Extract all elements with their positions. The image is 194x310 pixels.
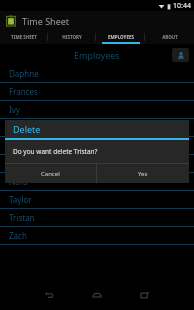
button[interactable]: Back (34, 280, 64, 310)
staticText: Taylor (9, 194, 32, 205)
staticText: Joanna (9, 122, 35, 133)
staticText: Maria (9, 158, 31, 169)
staticText: Kate (9, 140, 26, 151)
staticText: EMPLOYEES (108, 34, 134, 40)
button[interactable]: EMPLOYEES (96, 30, 145, 44)
button[interactable]: Nora (0, 173, 194, 191)
button[interactable]: Maria (0, 155, 194, 173)
staticText: Yes (138, 170, 148, 178)
staticText: Nora (9, 176, 28, 187)
button[interactable]: Yes (97, 164, 189, 183)
button[interactable]: Joanna (0, 119, 194, 137)
staticText: ABOUT (162, 34, 178, 40)
button[interactable]: Taylor (0, 191, 194, 209)
button[interactable]: Recent apps (130, 280, 160, 310)
button[interactable]: HISTORY (48, 30, 96, 44)
staticText: Employees (74, 49, 120, 61)
staticText: TIME SHEET (11, 34, 37, 40)
button[interactable]: Frances (0, 83, 194, 101)
button[interactable]: Daphne (0, 65, 194, 83)
staticText: Cancel (41, 170, 60, 178)
button[interactable]: Zach (0, 227, 194, 245)
button[interactable]: Ivy (0, 101, 194, 119)
button[interactable]: Cancel (5, 164, 96, 183)
staticText: Time Sheet (22, 15, 70, 27)
staticText: Do you want delete Tristan? (13, 147, 98, 156)
staticText: Frances (9, 86, 38, 97)
staticText: HISTORY (62, 34, 82, 40)
button[interactable]: ABOUT (145, 30, 194, 44)
button[interactable]: Kate (0, 137, 194, 155)
button[interactable]: Add employee (172, 48, 189, 62)
staticText: 10:44 (173, 1, 191, 11)
button[interactable]: Home (82, 280, 112, 310)
staticText: Daphne (9, 68, 39, 79)
staticText: Tristan (9, 212, 35, 223)
staticText: Zach (9, 230, 27, 241)
staticText: Ivy (9, 104, 20, 115)
button[interactable]: TIME SHEET (0, 30, 48, 44)
staticText: Delete (13, 123, 41, 135)
button[interactable]: Tristan (0, 209, 194, 227)
